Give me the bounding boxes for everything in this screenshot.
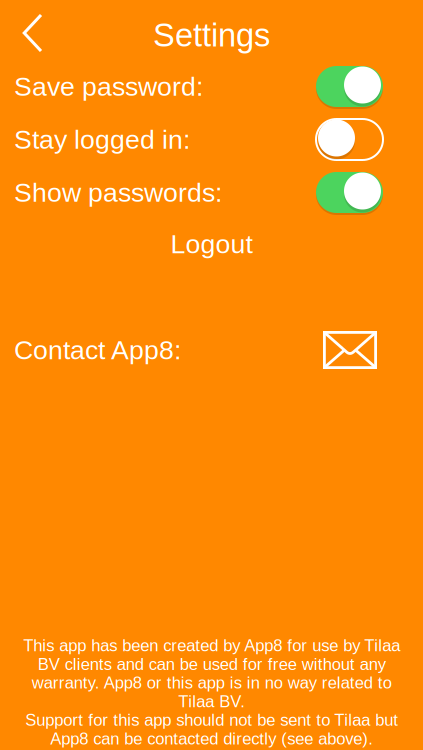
staticText: Logout xyxy=(170,229,252,259)
button[interactable]: Show passwords: xyxy=(0,166,423,219)
button[interactable]: Back xyxy=(0,1,57,59)
staticText: Contact App8: xyxy=(14,335,181,365)
staticText: Show passwords: xyxy=(14,178,222,207)
button[interactable]: Logout xyxy=(0,219,423,269)
staticText: Save password: xyxy=(14,72,203,101)
staticText: Settings xyxy=(153,17,270,53)
staticText: Stay logged in: xyxy=(14,125,190,154)
button[interactable]: Contact App8: xyxy=(0,324,423,376)
button[interactable]: Save password: xyxy=(0,60,423,113)
staticText: This app has been created by App8 for us… xyxy=(23,636,400,748)
button[interactable]: Stay logged in: xyxy=(0,113,423,166)
